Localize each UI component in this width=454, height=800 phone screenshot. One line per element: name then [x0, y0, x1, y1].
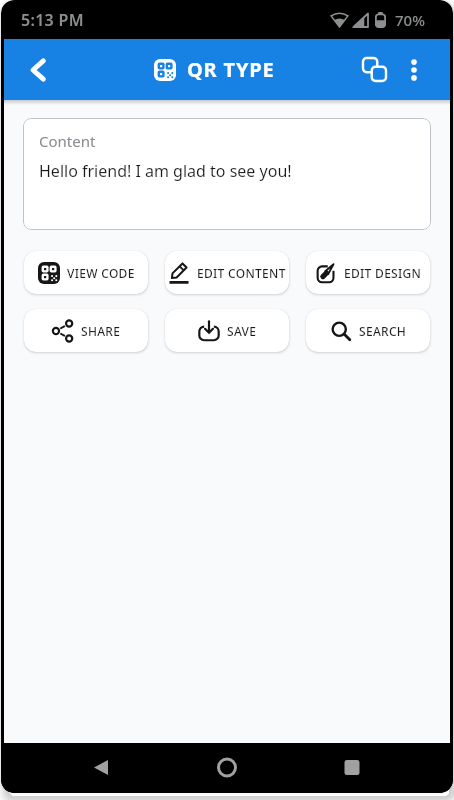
button[interactable]: [151, 743, 302, 793]
button[interactable]: Content: [23, 118, 431, 230]
staticText: SAVE: [227, 323, 257, 339]
button[interactable]: [354, 39, 394, 100]
button[interactable]: SAVE: [165, 309, 289, 352]
staticText: EDIT DESIGN: [344, 265, 422, 281]
staticText: SHARE: [81, 323, 121, 339]
staticText: 70%: [395, 10, 425, 30]
button[interactable]: [1, 743, 151, 793]
button[interactable]: VIEW CODE: [24, 251, 148, 294]
button[interactable]: [4, 39, 74, 100]
button[interactable]: [394, 39, 434, 100]
button[interactable]: SHARE: [24, 309, 148, 352]
staticText: Hello friend! I am glad to see you!: [39, 160, 292, 182]
button[interactable]: [302, 743, 453, 793]
button[interactable]: SEARCH: [306, 309, 430, 352]
staticText: SEARCH: [359, 323, 407, 339]
button[interactable]: EDIT DESIGN: [306, 251, 430, 294]
staticText: Content: [39, 131, 96, 151]
staticText: EDIT CONTENT: [197, 265, 286, 281]
staticText: 5:13 PM: [21, 9, 84, 31]
button[interactable]: EDIT CONTENT: [165, 251, 289, 294]
staticText: VIEW CODE: [67, 265, 135, 281]
staticText: QR TYPE: [187, 56, 275, 83]
